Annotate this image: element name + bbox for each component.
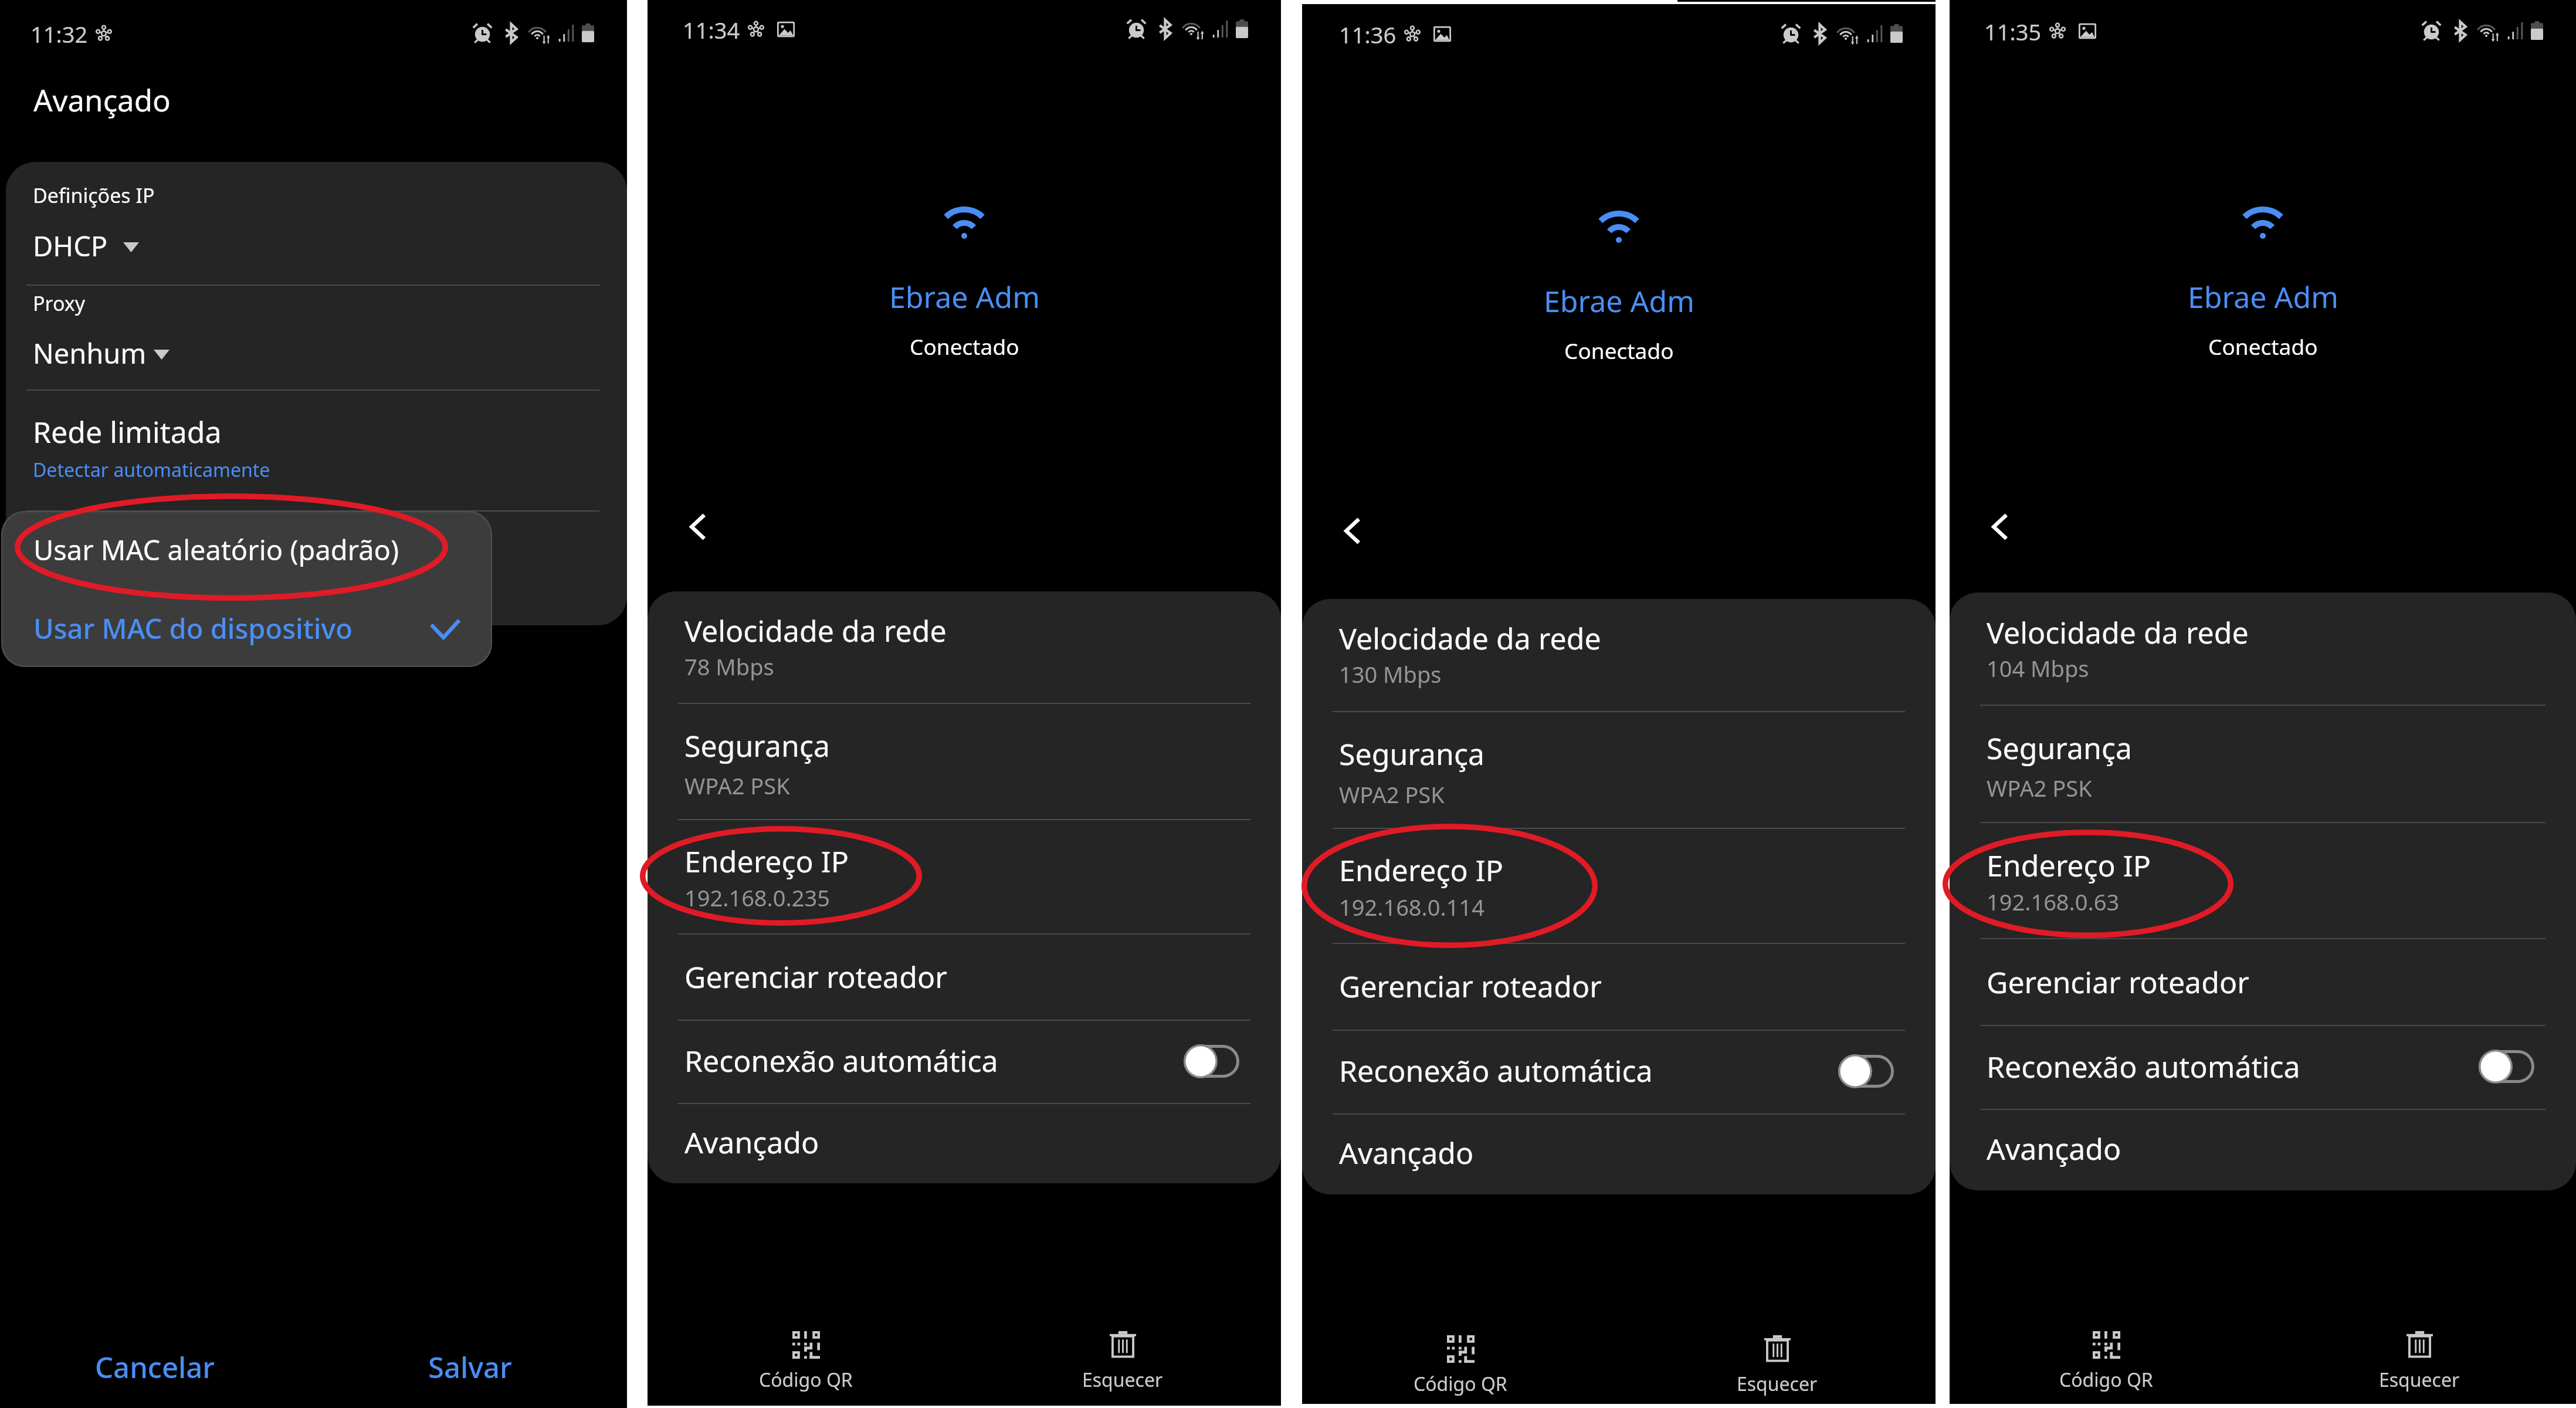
button[interactable]: Voltar [1985,506,2027,548]
staticText: Avançado [1339,1133,1474,1173]
staticText: Conectado [2208,331,2318,361]
button[interactable]: Velocidade da rede [1302,599,1936,711]
button[interactable]: Código QR [741,1320,870,1402]
staticText: Esquecer [2379,1367,2460,1393]
staticText: Proxy [33,290,86,317]
staticText: Cancelar [95,1348,215,1387]
staticText: Ebrae Adm [889,277,1040,317]
button[interactable]: Esquecer [2355,1320,2484,1402]
staticText: Detectar automaticamente [33,457,270,483]
button[interactable]: Reconexão automática [1302,1031,1936,1113]
staticText: 130 Mbps [1339,659,1442,689]
staticText: Segurança [684,726,830,766]
staticText: Reconexão automática [684,1041,998,1081]
staticText: Código QR [2059,1367,2153,1393]
staticText: Endereço IP [684,841,849,881]
button[interactable]: Reconexão automática [2479,1048,2535,1085]
staticText: Rede limitada [33,412,222,452]
button[interactable]: Segurança [1302,712,1936,828]
button[interactable]: Reconexão automática [1838,1053,1894,1089]
button[interactable]: Avançado [1302,1115,1936,1194]
button[interactable]: Salvar [352,1320,587,1402]
staticText: Avançado [684,1122,819,1162]
button[interactable]: Rede limitada [6,391,627,510]
button[interactable]: Gerenciar roteador [648,935,1281,1020]
staticText: DHCP [33,227,108,265]
button[interactable]: Segurança [1950,706,2576,822]
button[interactable]: Voltar [683,506,725,548]
button[interactable]: Endereço IP [1950,824,2576,938]
staticText: 192.168.0.114 [1339,892,1484,922]
staticText: Ebrae Adm [2188,277,2338,317]
staticText: Código QR [1414,1371,1507,1397]
button[interactable]: Gerenciar roteador [1950,939,2576,1025]
button[interactable]: Esquecer [1713,1324,1842,1406]
button[interactable]: Usar MAC aleatório (padrão) [1,511,492,589]
button[interactable]: Reconexão automática [1950,1026,2576,1109]
staticText: 11:34 [683,15,740,45]
staticText: Avançado [1987,1129,2121,1169]
staticText: 11:35 [1984,16,2042,47]
button[interactable]: Velocidade da rede [1950,593,2576,705]
button[interactable]: Usar MAC do dispositivo [1,589,492,667]
staticText: Definições IP [33,182,155,209]
staticText: WPA2 PSK [1987,773,2092,803]
button[interactable]: Cancelar [18,1320,293,1402]
staticText: Velocidade da rede [684,611,947,651]
staticText: Código QR [759,1367,853,1393]
staticText: Endereço IP [1339,850,1503,890]
staticText: Segurança [1339,734,1484,774]
staticText: Esquecer [1737,1371,1818,1397]
staticText: Esquecer [1082,1367,1163,1393]
staticText: 192.168.0.63 [1987,886,2120,917]
staticText: Gerenciar roteador [1987,962,2249,1002]
button[interactable]: Avançado [648,1104,1281,1183]
button[interactable]: Reconexão automática [1184,1043,1240,1079]
button[interactable]: Proxy [6,286,627,390]
staticText: 192.168.0.235 [684,882,830,913]
staticText: Avançado [33,79,171,120]
staticText: Gerenciar roteador [684,957,947,997]
staticText: Usar MAC aleatório (padrão) [33,531,399,568]
button[interactable]: Definições IP [6,162,627,285]
staticText: Conectado [910,331,1019,361]
staticText: Velocidade da rede [1987,612,2249,652]
button[interactable]: Código QR [2042,1320,2171,1402]
button[interactable]: Gerenciar roteador [1302,944,1936,1030]
staticText: Reconexão automática [1987,1047,2300,1087]
button[interactable]: Esquecer [1058,1320,1187,1402]
staticText: WPA2 PSK [684,770,790,801]
staticText: Reconexão automática [1339,1051,1653,1091]
button[interactable]: Endereço IP [1302,829,1936,943]
staticText: Conectado [1564,336,1674,365]
staticText: WPA2 PSK [1339,779,1445,810]
button[interactable]: Velocidade da rede [648,591,1281,703]
staticText: Ebrae Adm [1544,281,1694,321]
staticText: 78 Mbps [684,651,774,682]
button[interactable]: Reconexão automática [648,1021,1281,1103]
button[interactable]: Código QR [1396,1324,1525,1406]
staticText: 11:36 [1339,19,1397,50]
staticText: Gerenciar roteador [1339,966,1602,1006]
staticText: Velocidade da rede [1339,618,1601,658]
button[interactable]: Voltar [1337,510,1379,552]
button[interactable]: Segurança [648,704,1281,819]
staticText: Salvar [428,1348,512,1387]
button[interactable]: Endereço IP [648,820,1281,933]
staticText: 104 Mbps [1987,653,2089,683]
staticText: Nenhum [33,334,147,372]
staticText: Usar MAC do dispositivo [33,610,352,647]
button[interactable]: Avançado [1950,1111,2576,1190]
staticText: 11:32 [30,19,88,49]
staticText: Endereço IP [1987,845,2151,885]
staticText: Segurança [1987,728,2132,768]
